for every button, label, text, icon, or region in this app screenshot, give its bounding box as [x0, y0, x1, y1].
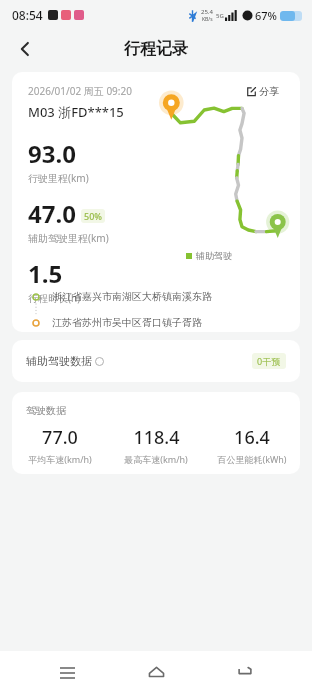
staticText: 平均车速(km/h)	[28, 453, 92, 465]
staticText: 118.4	[133, 425, 180, 450]
staticText: 最高车速(km/h)	[124, 453, 188, 465]
button[interactable]: Recent apps	[45, 651, 89, 693]
button[interactable]: Back	[8, 32, 42, 66]
button[interactable]: 辅助驾驶数据	[12, 340, 300, 382]
staticText: 67%	[255, 8, 277, 23]
staticText: 93.0	[28, 137, 76, 170]
staticText: 5G	[216, 12, 224, 20]
staticText: 辅助驾驶数据	[26, 354, 92, 368]
staticText: 百公里能耗(kWh)	[217, 453, 287, 465]
button[interactable]: 分享	[238, 82, 288, 101]
staticText: 1.5	[28, 257, 63, 290]
staticText: 08:54	[12, 7, 43, 23]
staticText: 驾驶数据	[26, 404, 66, 417]
button[interactable]: Home	[134, 651, 178, 693]
staticText: 47.0	[28, 197, 76, 230]
staticText: 77.0	[42, 425, 78, 450]
button[interactable]: Back	[223, 651, 267, 693]
staticText: 行程记录	[124, 39, 188, 59]
staticText: 江苏省苏州市吴中区胥口镇子胥路	[52, 316, 202, 329]
staticText: KB/s	[202, 16, 213, 23]
staticText: 辅助驾驶	[196, 250, 232, 261]
staticText: 行驶里程(km)	[28, 171, 89, 185]
staticText: 16.4	[234, 425, 270, 450]
staticText: 25.4	[201, 8, 213, 16]
staticText: M03 浙FD***15	[28, 103, 124, 121]
staticText: 行程时长(h)	[28, 291, 81, 305]
staticText: 浙江省嘉兴市南湖区大桥镇南溪东路	[52, 290, 212, 303]
staticText: 2026/01/02 周五 09:20	[28, 84, 132, 98]
staticText: 分享	[259, 85, 279, 98]
staticText: 辅助驾驶里程(km)	[28, 231, 109, 245]
staticText: 50%	[84, 210, 102, 222]
staticText: 0干预	[257, 355, 281, 367]
